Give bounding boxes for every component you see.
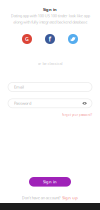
staticText: Sign in bbox=[43, 179, 57, 184]
staticText: Don't have an account? bbox=[22, 195, 61, 200]
staticText: Email bbox=[14, 84, 24, 90]
button[interactable]: Don't have an account? bbox=[22, 195, 78, 200]
staticText: or be classical bbox=[37, 61, 62, 66]
button[interactable]: Sign in with Facebook bbox=[45, 34, 55, 44]
button[interactable]: Sign in with Twitter bbox=[68, 34, 78, 44]
staticText: Sign up bbox=[62, 195, 78, 200]
staticText: G bbox=[25, 35, 29, 43]
button[interactable]: Sign in bbox=[29, 177, 71, 187]
staticText: Password bbox=[14, 101, 31, 106]
staticText: f bbox=[48, 34, 51, 43]
staticText: Forgot your password? bbox=[62, 113, 92, 117]
button[interactable]: Sign in with Google bbox=[22, 34, 32, 44]
staticText: Sign in bbox=[43, 7, 57, 12]
button[interactable]: Show password bbox=[81, 100, 88, 106]
button[interactable]: Forgot your password? bbox=[62, 113, 92, 117]
staticText: Dating app with 100 US 100 tinder look l… bbox=[10, 13, 89, 25]
